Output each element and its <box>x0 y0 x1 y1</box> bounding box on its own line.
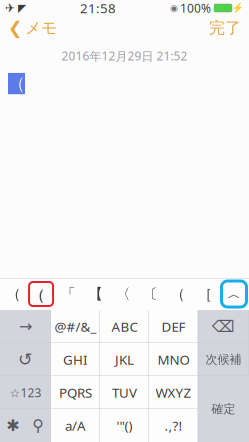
button[interactable]: 次候補 <box>198 343 249 376</box>
staticText: （ <box>170 285 185 303</box>
staticText: ⚲ <box>32 416 44 435</box>
staticText: ✈ <box>5 1 15 15</box>
staticText: 〈 <box>116 285 131 303</box>
staticText: 【 <box>88 285 103 303</box>
staticText: a/A <box>65 417 86 434</box>
button[interactable]: ( <box>27 278 55 310</box>
staticText: WXYZ <box>155 384 191 401</box>
staticText: 2016年12月29日 21:52 <box>61 48 187 64</box>
button[interactable]: Dictate <box>25 409 51 442</box>
button[interactable]: JKL <box>100 343 149 376</box>
button[interactable]: '"() <box>100 409 149 442</box>
button[interactable]: @#/&_ <box>51 310 100 343</box>
staticText: 「 <box>61 285 76 303</box>
button[interactable]: ABC <box>100 310 149 343</box>
staticText: 21:58 <box>80 0 116 17</box>
staticText: 次候補 <box>205 352 241 367</box>
staticText: ↺ <box>18 350 33 369</box>
staticText: ︿ <box>227 286 240 302</box>
staticText: ◤ <box>18 2 26 14</box>
button[interactable]: ［ <box>192 278 219 310</box>
button[interactable]: a/A <box>51 409 100 442</box>
staticText: @#/&_ <box>54 318 96 335</box>
button[interactable]: Undo <box>0 343 51 376</box>
staticText: ( <box>39 284 43 304</box>
staticText: メモ <box>25 18 57 38</box>
staticText: ［ <box>198 285 213 303</box>
button[interactable]: 「 <box>55 278 82 310</box>
button[interactable]: 【 <box>82 278 109 310</box>
staticText: ☆123 <box>9 384 41 400</box>
staticText: 〔 <box>143 285 158 303</box>
button[interactable]: Cursor right <box>0 310 51 343</box>
button[interactable]: Globe <box>0 409 25 442</box>
staticText: → <box>19 317 32 336</box>
staticText: DEF <box>161 318 185 335</box>
button[interactable]: DEF <box>149 310 198 343</box>
button[interactable]: 完了 <box>201 15 249 41</box>
staticText: .,?! <box>164 417 182 434</box>
staticText: ◉ <box>170 3 178 13</box>
button[interactable]: MNO <box>149 343 198 376</box>
staticText: 確定 <box>211 402 235 416</box>
button[interactable]: .,?! <box>149 409 198 442</box>
button[interactable]: （ <box>0 278 27 310</box>
button[interactable]: PQRS <box>51 376 100 409</box>
button[interactable]: WXYZ <box>149 376 198 409</box>
button[interactable]: 確定 <box>198 376 249 442</box>
staticText: MNO <box>157 351 189 368</box>
staticText: 100% <box>180 0 211 16</box>
button[interactable]: Expand candidates <box>219 278 249 310</box>
button[interactable]: TUV <box>100 376 149 409</box>
staticText: TUV <box>112 384 137 401</box>
staticText: GHI <box>63 351 88 368</box>
staticText: ❮ <box>8 18 23 38</box>
staticText: （ <box>8 73 25 94</box>
staticText: PQRS <box>59 384 92 401</box>
staticText: 完了 <box>209 18 241 38</box>
staticText: ✱ <box>6 416 19 435</box>
button[interactable]: Numbers <box>0 376 51 409</box>
button[interactable]: 〈 <box>109 278 137 310</box>
staticText: '"() <box>116 417 132 434</box>
button[interactable]: 〔 <box>137 278 164 310</box>
staticText: （ <box>6 285 21 303</box>
button[interactable]: Delete <box>198 310 249 343</box>
staticText: ⚡ <box>232 3 244 13</box>
button[interactable]: ❮ <box>0 15 65 41</box>
staticText: JKL <box>115 351 134 368</box>
staticText: ABC <box>111 318 137 335</box>
staticText: ⌫ <box>212 317 235 336</box>
button[interactable]: GHI <box>51 343 100 376</box>
button[interactable]: （ <box>164 278 192 310</box>
